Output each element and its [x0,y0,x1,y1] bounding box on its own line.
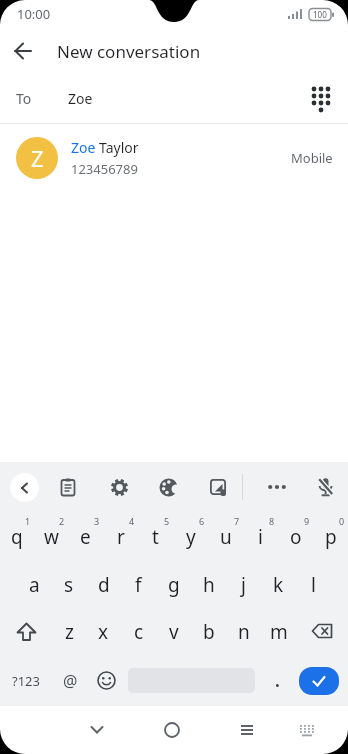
staticText: l [311,572,316,598]
staticText: 3 [94,515,100,527]
staticText: y [186,524,196,550]
staticText: Mobile [291,149,333,167]
button[interactable] [228,711,266,749]
button[interactable]: t [138,512,173,561]
staticText: To [16,89,32,108]
staticText: e [80,524,91,550]
button[interactable] [299,667,339,695]
staticText: 6 [199,515,205,527]
staticText: n [238,619,250,645]
staticText: z [65,619,74,645]
staticText: k [273,572,284,598]
staticText: 8 [269,515,275,527]
staticText: j [241,572,246,598]
button[interactable]: l [296,561,331,608]
button[interactable]: v [156,608,191,656]
staticText: 100 [313,9,327,20]
staticText: x [98,619,109,645]
button[interactable]: n [226,608,261,656]
staticText: 0 [339,515,345,527]
button[interactable]: z [52,608,86,656]
button[interactable] [78,711,116,749]
staticText: o [290,524,302,550]
button[interactable]: e [68,512,103,561]
button[interactable] [10,473,39,502]
staticText: 10:00 [17,5,51,23]
button[interactable]: . [262,656,292,705]
button[interactable]: @ [52,656,88,705]
staticText: g [168,572,180,598]
button[interactable] [153,472,183,502]
button[interactable]: r [103,512,138,561]
button[interactable]: d [86,561,121,608]
staticText: 123456789 [71,160,138,178]
button[interactable]: x [86,608,121,656]
button[interactable]: f [121,561,156,608]
button[interactable]: s [51,561,86,608]
staticText: b [203,619,215,645]
button[interactable]: y [173,512,208,561]
button[interactable] [298,76,344,122]
staticText: d [98,572,110,598]
staticText: Zoe Taylor [71,138,139,157]
button[interactable]: a [17,561,51,608]
button[interactable]: To [0,74,348,123]
button[interactable] [262,472,292,502]
button[interactable]: Z [0,124,348,191]
button[interactable]: ?123 [0,656,52,705]
staticText: Zoe [68,89,93,108]
button[interactable]: p [313,512,348,561]
staticText: p [325,524,337,550]
staticText: 9 [304,515,310,527]
staticText: v [169,619,179,645]
button[interactable]: b [191,608,226,656]
button[interactable]: j [226,561,261,608]
staticText: u [220,524,232,550]
staticText: w [44,524,59,550]
button[interactable]: q [0,512,34,561]
staticText: f [135,572,142,598]
staticText: m [270,619,288,645]
button[interactable] [0,608,52,656]
staticText: s [64,572,74,598]
button[interactable]: o [278,512,313,561]
staticText: t [152,524,159,550]
staticText: a [29,572,40,598]
button[interactable] [296,608,348,656]
button[interactable]: w [34,512,68,561]
button[interactable]: u [208,512,243,561]
staticText: 2 [59,515,65,527]
staticText: r [117,524,125,550]
staticText: q [11,524,23,550]
button[interactable] [153,711,191,749]
staticText: 4 [129,515,135,527]
button[interactable]: i [243,512,278,561]
button[interactable]: k [261,561,296,608]
button[interactable] [0,28,46,74]
staticText: New conversation [57,40,201,63]
button[interactable] [203,472,233,502]
staticText: 5 [164,515,170,527]
button[interactable]: c [121,608,156,656]
staticText: 1 [25,515,31,527]
button[interactable] [288,711,326,749]
staticText: i [258,524,263,550]
button[interactable]: h [191,561,226,608]
staticText: ?123 [12,672,40,690]
staticText: 7 [234,515,240,527]
staticText: Z [31,143,44,173]
button[interactable]: m [261,608,296,656]
staticText: @ [63,670,78,692]
staticText: . [275,669,280,692]
button[interactable] [53,472,83,502]
staticText: c [134,619,144,645]
button[interactable] [104,472,134,502]
button[interactable] [310,472,340,502]
button[interactable]: g [156,561,191,608]
button[interactable] [88,656,124,705]
staticText: h [203,572,215,598]
